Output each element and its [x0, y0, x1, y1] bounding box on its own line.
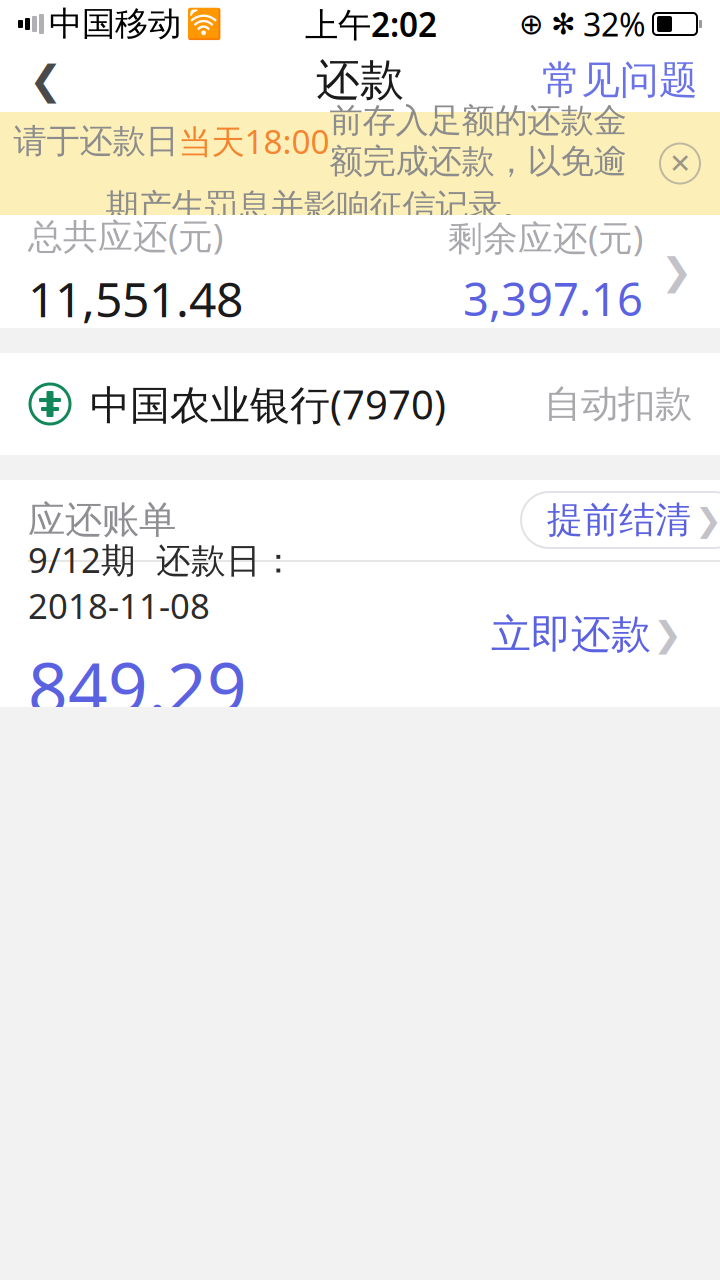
staticText: 9/12期 还款日：2018-11-08: [28, 536, 296, 628]
button[interactable]: 常见问题: [520, 48, 720, 112]
staticText: 还款: [316, 53, 404, 107]
staticText: 🛜: [186, 7, 223, 41]
staticText: 849.29: [28, 640, 247, 733]
staticText: 期产生罚息并影响征信记录。: [105, 186, 534, 227]
staticText: ✕: [669, 148, 691, 179]
staticText: 中国农业银行(7970): [90, 377, 446, 430]
staticText: ❯: [653, 615, 682, 654]
staticText: 当天18:00: [178, 119, 329, 163]
staticText: 前存入足额的还款金额完成还款，以免逾: [329, 100, 626, 182]
staticText: 应还账单: [28, 497, 176, 543]
staticText: ❮: [29, 57, 63, 103]
staticText: ❯: [695, 502, 720, 538]
staticText: 上午2:02: [305, 2, 437, 46]
staticText: 立即还款: [491, 610, 651, 659]
staticText: ✻: [551, 7, 576, 41]
staticText: 常见问题: [542, 56, 698, 104]
button[interactable]: 关闭提示: [640, 123, 720, 203]
button[interactable]: 总共应还(元): [0, 215, 720, 328]
staticText: 3,397.16: [463, 268, 643, 329]
staticText: 32%: [583, 3, 646, 45]
staticText: 中国移动: [49, 3, 181, 44]
button[interactable]: 返回: [0, 48, 92, 112]
staticText: 11,551.48: [28, 267, 243, 330]
staticText: 剩余应还(元): [448, 214, 643, 260]
staticText: 总共应还(元): [28, 213, 223, 259]
button[interactable]: 提前结清: [521, 492, 720, 548]
staticText: ❯: [661, 250, 692, 293]
button[interactable]: 立即还款: [481, 599, 692, 669]
staticText: 提前结清: [547, 498, 691, 542]
staticText: 自动扣款: [544, 381, 692, 427]
staticText: 请于还款日: [13, 121, 178, 161]
button[interactable]: 中国农业银行(7970): [0, 353, 720, 455]
staticText: ⊕: [519, 7, 544, 41]
